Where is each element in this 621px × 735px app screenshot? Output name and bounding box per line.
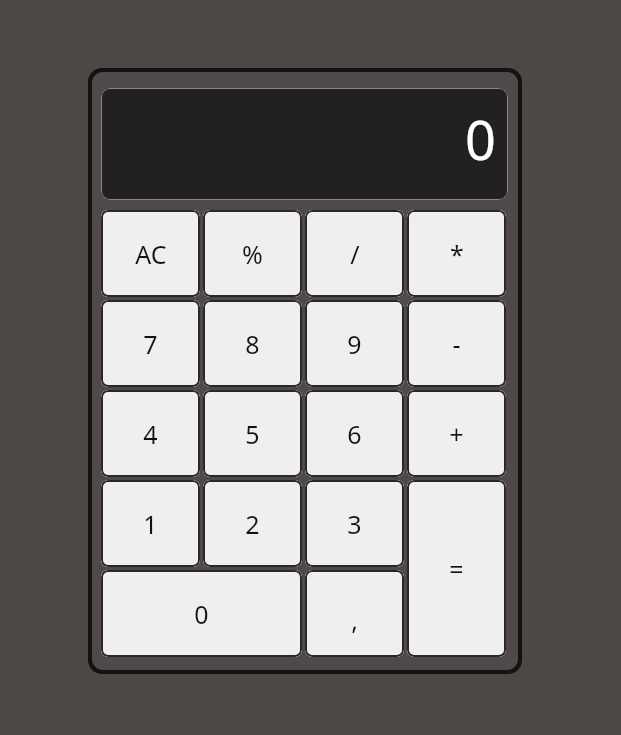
- button[interactable]: 4: [101, 390, 200, 477]
- button[interactable]: %: [203, 210, 302, 297]
- button[interactable]: 5: [203, 390, 302, 477]
- staticText: ,: [351, 603, 358, 637]
- staticText: 2: [245, 507, 260, 541]
- button[interactable]: 7: [101, 300, 200, 387]
- button[interactable]: -: [407, 300, 506, 387]
- staticText: 9: [347, 327, 362, 361]
- button[interactable]: 3: [305, 480, 404, 567]
- button[interactable]: *: [407, 210, 506, 297]
- button[interactable]: 6: [305, 390, 404, 477]
- staticText: 6: [347, 417, 362, 451]
- staticText: %: [242, 237, 263, 271]
- button[interactable]: 8: [203, 300, 302, 387]
- button[interactable]: ,: [305, 570, 404, 657]
- staticText: 8: [245, 327, 260, 361]
- staticText: 7: [143, 327, 158, 361]
- button[interactable]: 0: [101, 570, 302, 657]
- staticText: AC: [135, 237, 167, 271]
- staticText: 3: [347, 507, 362, 541]
- button[interactable]: AC: [101, 210, 200, 297]
- staticText: =: [449, 552, 464, 586]
- staticText: *: [450, 237, 464, 271]
- staticText: 0: [194, 597, 209, 631]
- staticText: 0: [465, 102, 496, 176]
- button[interactable]: 2: [203, 480, 302, 567]
- staticText: 5: [245, 417, 260, 451]
- button[interactable]: =: [407, 480, 506, 657]
- staticText: 1: [143, 507, 158, 541]
- button[interactable]: 9: [305, 300, 404, 387]
- button[interactable]: 1: [101, 480, 200, 567]
- button[interactable]: /: [305, 210, 404, 297]
- staticText: 4: [143, 417, 158, 451]
- staticText: /: [350, 237, 360, 271]
- staticText: +: [449, 417, 464, 451]
- staticText: -: [452, 327, 461, 361]
- button[interactable]: +: [407, 390, 506, 477]
